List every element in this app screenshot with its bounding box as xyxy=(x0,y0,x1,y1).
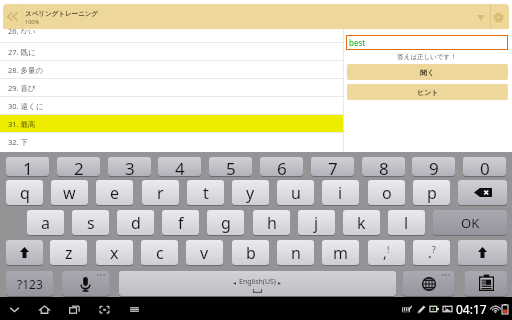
staticText: a xyxy=(41,212,50,234)
button[interactable]: g xyxy=(207,210,244,235)
button[interactable]: q xyxy=(6,180,43,205)
staticText: best xyxy=(349,37,366,48)
button[interactable]: d xyxy=(117,210,154,235)
button[interactable]: Switch language xyxy=(403,271,454,296)
button[interactable]: 9 xyxy=(412,157,455,176)
button[interactable] xyxy=(458,240,507,265)
button[interactable]: 26. ない xyxy=(0,29,343,37)
staticText: 6 xyxy=(277,157,287,176)
staticText: z xyxy=(65,242,73,264)
button[interactable]: 3 xyxy=(108,157,151,176)
staticText: 30. 遠くに xyxy=(8,101,44,111)
staticText: 聞く xyxy=(420,68,435,77)
button[interactable]: 5 xyxy=(209,157,252,176)
staticText: ! xyxy=(387,244,390,256)
button[interactable]: s xyxy=(72,210,109,235)
button[interactable]: 8 xyxy=(362,157,405,176)
button[interactable] xyxy=(6,240,43,265)
button[interactable]: u xyxy=(277,180,314,205)
button[interactable]: 0 xyxy=(463,157,506,176)
button[interactable]: OK xyxy=(433,210,507,235)
button[interactable]: x xyxy=(96,240,133,265)
button[interactable]: f xyxy=(162,210,199,235)
staticText: 2 xyxy=(74,157,84,176)
button[interactable]: 7 xyxy=(311,157,354,176)
button[interactable]: o xyxy=(368,180,405,205)
button[interactable]: 28. 多量の xyxy=(0,61,343,78)
staticText: i xyxy=(338,182,343,204)
button[interactable]: l xyxy=(388,210,425,235)
button[interactable]: b xyxy=(232,240,269,265)
button[interactable]: w xyxy=(51,180,88,205)
button[interactable]: Home xyxy=(35,300,53,318)
staticText: 4 xyxy=(175,157,185,176)
button[interactable]: p xyxy=(413,180,450,205)
button[interactable]: v xyxy=(186,240,223,265)
staticText: 26. ない xyxy=(8,29,36,34)
button[interactable]: Back xyxy=(5,300,23,318)
button[interactable]: m xyxy=(322,240,359,265)
staticText: y xyxy=(246,182,255,204)
button[interactable]: Settings xyxy=(491,4,509,29)
button[interactable]: , xyxy=(368,240,405,265)
button[interactable]: e xyxy=(96,180,133,205)
staticText: 7 xyxy=(328,157,338,176)
staticText: g xyxy=(221,212,231,234)
button[interactable]: t xyxy=(187,180,224,205)
button[interactable]: 2 xyxy=(57,157,100,176)
button[interactable]: 27. 既に xyxy=(0,43,343,60)
staticText: 27. 既に xyxy=(8,47,36,57)
button[interactable]: k xyxy=(343,210,380,235)
button[interactable]: ?123 xyxy=(6,271,53,296)
button[interactable]: 32. 下 xyxy=(0,133,343,150)
button[interactable]: More options xyxy=(472,4,490,29)
staticText: 31. 最高 xyxy=(8,119,36,129)
button[interactable]: Back xyxy=(3,4,22,29)
staticText: o xyxy=(382,182,392,204)
button[interactable]: i xyxy=(322,180,359,205)
button[interactable]: 聞く xyxy=(347,64,508,80)
staticText: 0 xyxy=(480,157,490,176)
staticText: j xyxy=(314,212,319,234)
button[interactable]: n xyxy=(277,240,314,265)
staticText: ▸ xyxy=(278,279,282,286)
staticText: u xyxy=(291,182,301,204)
staticText: m xyxy=(333,242,348,264)
staticText: 8 xyxy=(379,157,389,176)
staticText: , xyxy=(383,243,387,262)
staticText: k xyxy=(357,212,366,234)
button[interactable]: best xyxy=(346,35,508,50)
button[interactable]: Space xyxy=(119,271,396,296)
button[interactable]: Screenshot xyxy=(95,300,113,318)
button[interactable]: a xyxy=(27,210,64,235)
button[interactable]: z xyxy=(50,240,87,265)
staticText: スペリングトレーニング xyxy=(25,10,99,18)
staticText: 100% xyxy=(25,18,40,25)
staticText: 28. 多量の xyxy=(8,65,44,75)
button[interactable]: y xyxy=(232,180,269,205)
button[interactable]: h xyxy=(253,210,290,235)
button[interactable]: Menu xyxy=(125,300,143,318)
button[interactable]: 30. 遠くに xyxy=(0,97,343,114)
staticText: p xyxy=(427,182,437,204)
button[interactable]: 4 xyxy=(158,157,201,176)
button[interactable]: 6 xyxy=(260,157,303,176)
staticText: b xyxy=(246,242,256,264)
staticText: t xyxy=(203,182,209,204)
button[interactable]: 1 xyxy=(6,157,49,176)
button[interactable]: 31. 最高 xyxy=(0,115,343,132)
staticText: r xyxy=(157,182,164,204)
button[interactable]: . xyxy=(413,240,450,265)
button[interactable]: Voice input xyxy=(62,271,109,296)
button[interactable]: r xyxy=(142,180,179,205)
staticText: 3 xyxy=(125,157,135,176)
button[interactable]: c xyxy=(141,240,178,265)
button[interactable]: ヒント xyxy=(347,84,508,100)
staticText: n xyxy=(291,242,301,264)
button[interactable]: j xyxy=(298,210,335,235)
staticText: ?123 xyxy=(17,276,43,292)
button[interactable]: Backspace xyxy=(458,180,507,205)
button[interactable]: 29. 喜び xyxy=(0,79,343,96)
button[interactable]: Recents xyxy=(65,300,83,318)
button[interactable]: Clipboard xyxy=(465,271,507,296)
